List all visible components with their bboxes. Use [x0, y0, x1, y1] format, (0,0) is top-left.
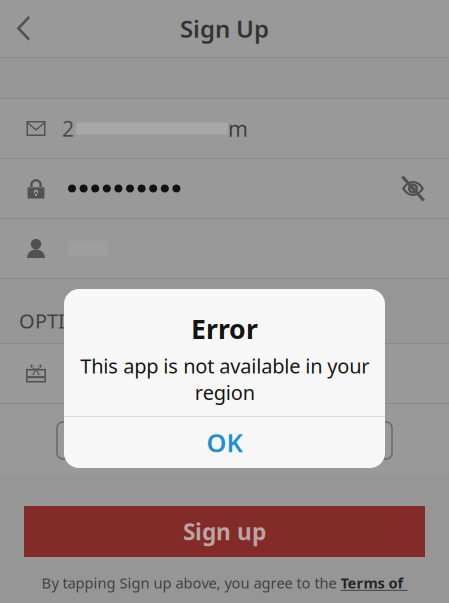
staticText: Error: [191, 311, 258, 346]
staticText: This app is not available in your region: [80, 352, 369, 405]
staticText: By tapping Sign up above, you agree to t…: [41, 573, 340, 592]
staticText: 2: [62, 114, 74, 143]
staticText: m: [228, 114, 248, 143]
button[interactable]: OK: [64, 417, 385, 468]
button[interactable]: Back: [0, 0, 46, 57]
staticText: Terms of: [340, 573, 407, 592]
button[interactable]: Terms of: [340, 573, 407, 592]
staticText: OPTIONS: [19, 307, 107, 334]
button[interactable]: Show password: [385, 159, 441, 218]
staticText: Sign up: [183, 516, 266, 546]
staticText: OK: [206, 426, 242, 459]
button[interactable]: Sign up: [24, 506, 425, 557]
staticText: Sign Up: [180, 13, 269, 44]
